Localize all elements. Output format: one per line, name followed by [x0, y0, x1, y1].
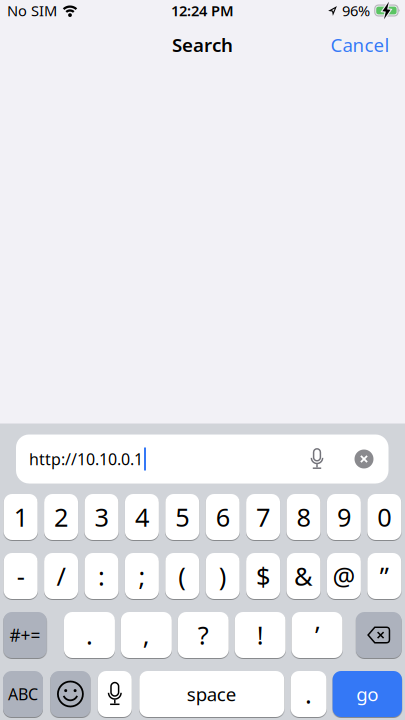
staticText: ;	[138, 559, 145, 593]
button[interactable]: ,	[121, 612, 172, 658]
staticText: 1	[14, 500, 28, 534]
staticText: ”	[380, 559, 389, 593]
button[interactable]: #+=	[3, 612, 47, 658]
staticText: )	[219, 559, 227, 593]
button[interactable]: ”	[367, 553, 401, 599]
button[interactable]: space	[139, 671, 284, 717]
button[interactable]: &	[286, 553, 320, 599]
staticText: 7	[256, 500, 270, 534]
staticText: 9	[337, 500, 351, 534]
staticText: 3	[94, 500, 108, 534]
staticText: ?	[198, 618, 209, 652]
staticText: (	[178, 559, 186, 593]
staticText: 12:24 PM	[171, 1, 234, 20]
button[interactable]: :	[84, 553, 118, 599]
staticText: 96%	[342, 1, 370, 20]
button[interactable]: Cancel	[330, 32, 389, 57]
button[interactable]	[356, 612, 402, 658]
button[interactable]: (	[165, 553, 199, 599]
staticText: Search	[172, 32, 233, 57]
staticText: $	[256, 559, 270, 593]
button[interactable]: 3	[84, 494, 118, 540]
button[interactable]: 2	[44, 494, 78, 540]
button[interactable]: 0	[367, 494, 401, 540]
button[interactable]: $	[246, 553, 280, 599]
button[interactable]: -	[4, 553, 38, 599]
button[interactable]	[98, 671, 132, 717]
staticText: 8	[296, 500, 310, 534]
button[interactable]: go	[333, 671, 402, 717]
button[interactable]: @	[327, 553, 361, 599]
staticText: 0	[377, 500, 391, 534]
staticText: ABC	[8, 683, 38, 705]
staticText: go	[356, 682, 378, 706]
staticText: 6	[216, 500, 230, 534]
staticText: http://10.10.0.1	[29, 448, 143, 470]
button[interactable]: 4	[125, 494, 159, 540]
button[interactable]: 6	[206, 494, 240, 540]
button[interactable]: 8	[286, 494, 320, 540]
staticText: @	[332, 559, 355, 593]
button[interactable]: 5	[165, 494, 199, 540]
staticText: !	[257, 618, 264, 652]
button[interactable]: 9	[327, 494, 361, 540]
button[interactable]: !	[235, 612, 286, 658]
staticText: No SIM	[7, 1, 57, 20]
button[interactable]: ’	[291, 612, 342, 658]
button[interactable]: ;	[125, 553, 159, 599]
staticText: /	[57, 559, 66, 593]
staticText: .	[305, 677, 312, 711]
button[interactable]: .	[64, 612, 115, 658]
staticText: ’	[315, 618, 319, 652]
button[interactable]: 7	[246, 494, 280, 540]
button[interactable]: http://10.10.0.1	[0, 423, 405, 494]
button[interactable]	[50, 671, 90, 717]
button[interactable]: ABC	[3, 671, 43, 717]
staticText: #+=	[9, 623, 40, 646]
button[interactable]	[309, 448, 324, 469]
staticText: 5	[175, 500, 189, 534]
staticText: ,	[143, 618, 150, 652]
staticText: 2	[54, 500, 68, 534]
staticText: :	[98, 559, 105, 593]
button[interactable]: .	[291, 671, 327, 717]
button[interactable]: 1	[4, 494, 38, 540]
button[interactable]: )	[206, 553, 240, 599]
staticText: space	[187, 682, 237, 706]
staticText: 4	[135, 500, 149, 534]
button[interactable]: ?	[178, 612, 229, 658]
button[interactable]: /	[44, 553, 78, 599]
button[interactable]	[354, 449, 373, 468]
staticText: &	[294, 559, 313, 593]
staticText: Cancel	[330, 32, 389, 57]
staticText: .	[86, 618, 93, 652]
staticText: -	[17, 559, 25, 593]
